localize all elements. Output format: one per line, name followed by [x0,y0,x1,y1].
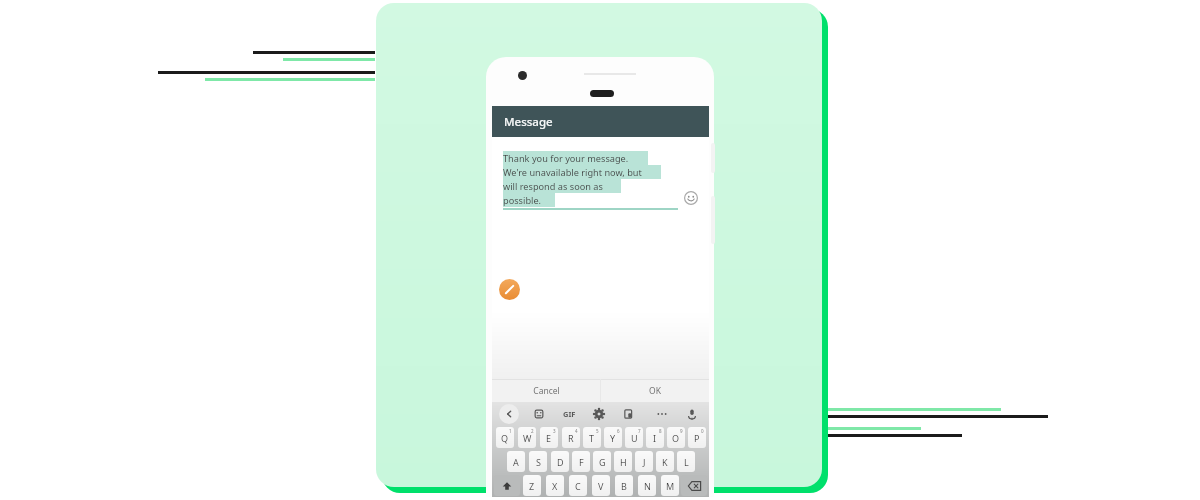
button[interactable]: Insert emoji [682,189,700,207]
button[interactable]: D [551,451,569,472]
staticText: G [599,456,606,468]
staticText: Q [501,432,509,444]
staticText: Message [504,114,553,130]
staticText: L [684,456,689,468]
button[interactable]: J [635,451,653,472]
staticText: S [536,456,541,468]
staticText: O [672,432,680,444]
staticText: A [513,456,519,468]
staticText: possible. [503,194,542,207]
button[interactable]: S [529,451,547,472]
staticText: D [557,456,564,468]
staticText: Y [610,432,616,444]
button[interactable]: P [688,427,706,448]
staticText: 4 [575,428,578,434]
staticText: GIF [563,409,576,419]
button[interactable]: T [583,427,601,448]
staticText: 5 [596,428,599,434]
staticText: 8 [659,428,662,434]
button[interactable]: G [593,451,611,472]
button[interactable]: Voice input [683,405,701,423]
staticText: E [546,432,552,444]
staticText: B [621,480,627,492]
staticText: 3 [553,428,556,434]
staticText: will respond as soon as [503,180,603,193]
button[interactable]: Settings [590,405,608,423]
staticText: Cancel [533,385,560,397]
staticText: X [552,480,558,492]
button[interactable]: GIF [560,405,578,423]
staticText: F [579,456,584,468]
staticText: K [662,456,668,468]
button[interactable]: OK [601,379,709,402]
button[interactable]: H [614,451,632,472]
staticText: C [575,480,581,492]
button[interactable]: I [646,427,664,448]
button[interactable]: C [569,475,587,496]
button[interactable]: M [661,475,679,496]
button[interactable]: Clipboard [620,405,638,423]
button[interactable]: O [667,427,685,448]
button[interactable]: N [638,475,656,496]
button[interactable]: Z [523,475,541,496]
staticText: 2 [531,428,534,434]
button[interactable]: X [546,475,564,496]
staticText: Thank you for your message. [503,152,629,165]
staticText: V [598,480,604,492]
button[interactable]: Shift [494,475,520,496]
staticText: N [644,480,651,492]
staticText: Z [529,480,535,492]
button[interactable]: W [518,427,536,448]
staticText: 9 [680,428,683,434]
button[interactable]: F [572,451,590,472]
staticText: M [666,480,675,492]
staticText: 0 [701,428,704,434]
staticText: 7 [638,428,641,434]
staticText: We're unavailable right now, but [503,166,642,179]
button[interactable]: R [562,427,580,448]
staticText: T [589,432,595,444]
staticText: OK [649,385,661,397]
staticText: I [653,432,657,444]
staticText: H [620,456,627,468]
button[interactable]: A [507,451,525,472]
staticText: W [523,432,532,444]
staticText: R [568,432,574,444]
button[interactable]: B [615,475,633,496]
button[interactable]: Compose message [499,279,520,300]
staticText: P [694,432,700,444]
staticText: 6 [617,428,620,434]
button[interactable]: Cancel [492,379,600,402]
button[interactable]: U [625,427,643,448]
button[interactable]: E [540,427,558,448]
staticText: U [631,432,638,444]
button[interactable]: K [656,451,674,472]
button[interactable]: Backspace [681,475,707,496]
button[interactable]: Back [500,405,518,423]
staticText: 1 [509,428,512,434]
staticText: J [643,456,646,468]
button[interactable]: L [677,451,695,472]
button[interactable]: Y [604,427,622,448]
button[interactable]: V [592,475,610,496]
button[interactable]: Q [496,427,514,448]
button[interactable]: More options [653,405,671,423]
button[interactable]: Message [492,106,709,137]
button[interactable]: Stickers [530,405,548,423]
